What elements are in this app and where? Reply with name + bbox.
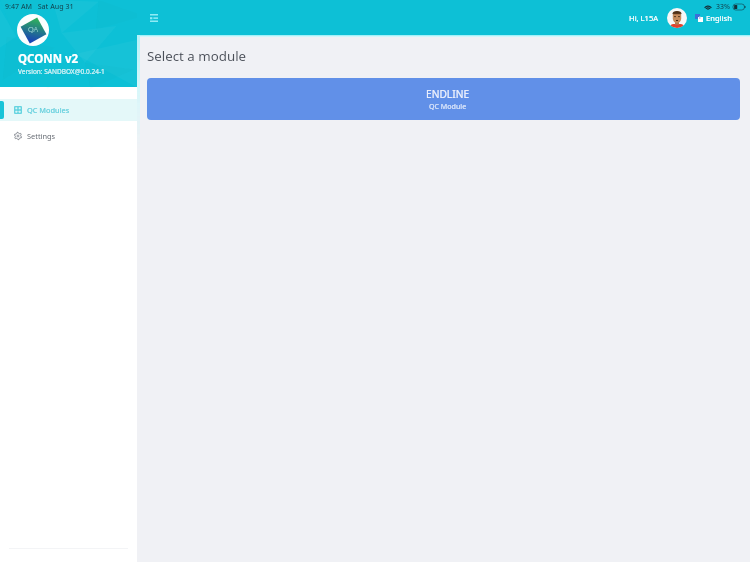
staticText: 33% — [716, 2, 730, 12]
staticText: QC Module — [429, 101, 467, 111]
button[interactable]: ENDLINE — [147, 78, 740, 120]
button[interactable]: QC Modules — [0, 99, 137, 121]
staticText: Hi, L15A — [629, 13, 659, 23]
staticText: QC Modules — [27, 105, 70, 115]
button[interactable]: Settings — [0, 125, 137, 147]
staticText: Select a module — [147, 47, 247, 65]
button[interactable]: Open navigation menu — [143, 7, 165, 29]
staticText: ENDLINE — [426, 87, 470, 101]
staticText: English — [706, 13, 732, 23]
staticText: QCONN v2 — [18, 51, 79, 67]
button[interactable]: English — [695, 13, 732, 23]
staticText: Settings — [27, 131, 56, 141]
staticText: Version: SANDBOX@0.0.24-1 — [18, 67, 105, 76]
staticText: 9:47 AM Sat Aug 31 — [5, 1, 74, 11]
button[interactable]: Profile — [667, 8, 687, 28]
staticText: QA — [28, 24, 39, 34]
